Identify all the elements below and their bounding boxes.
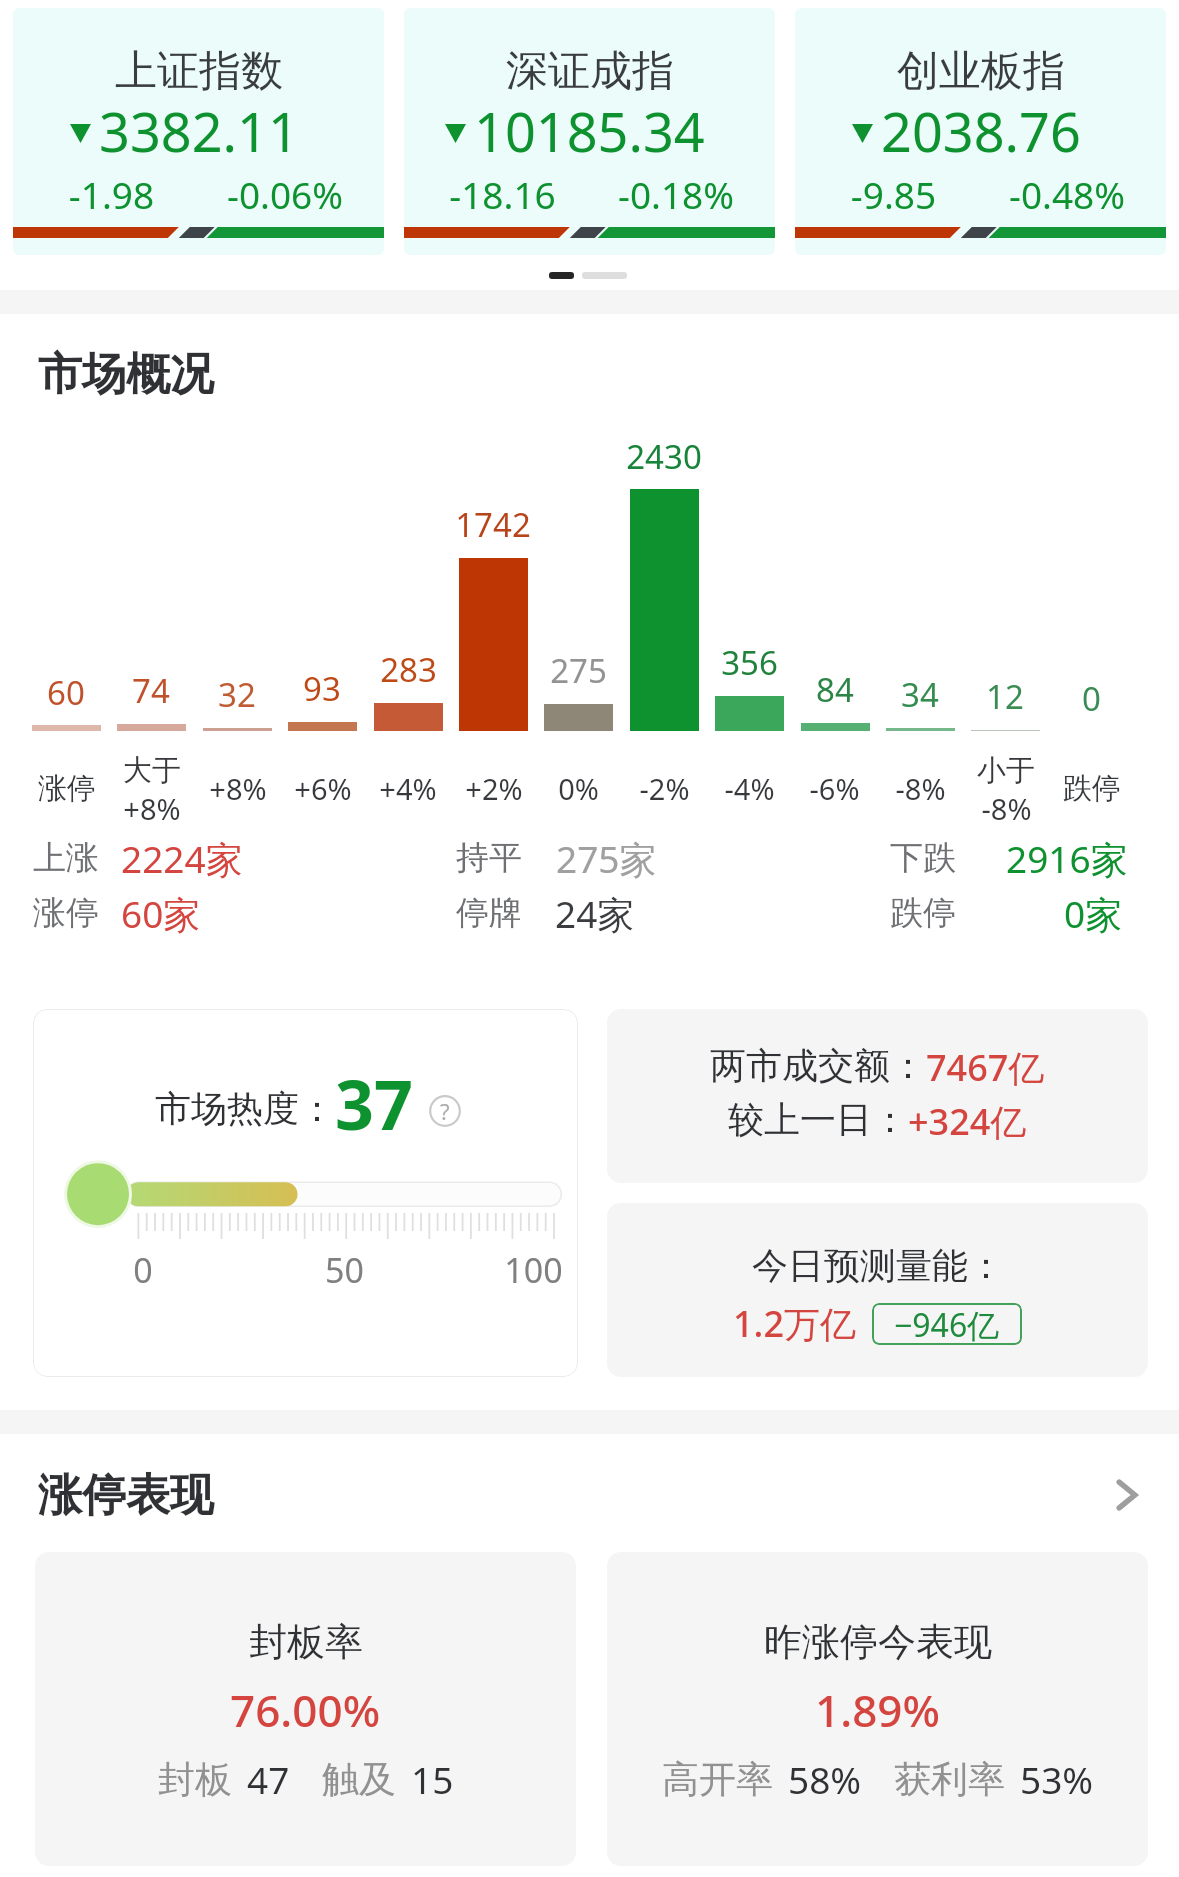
staticText: 58% (788, 1754, 862, 1804)
staticText: 跌停 (890, 892, 956, 934)
staticText: 0 (133, 1247, 153, 1293)
staticText: −946亿 (894, 1303, 1000, 1345)
staticText: 停牌 (456, 892, 522, 934)
staticText: -0.48% (980, 169, 1154, 219)
staticText: 74 (132, 668, 170, 713)
staticText: +8% (123, 789, 181, 824)
button[interactable]: 昨涨停今表现 (607, 1552, 1148, 1866)
staticText: -0.06% (198, 169, 372, 219)
staticText: 7467亿 (926, 1043, 1045, 1092)
staticText: 涨停表现 (38, 1468, 214, 1523)
staticText: 275家 (556, 833, 657, 884)
staticText: 76.00% (230, 1680, 381, 1740)
staticText: 小于 (977, 752, 1035, 789)
staticText: 47 (247, 1754, 290, 1804)
staticText: +324亿 (908, 1097, 1027, 1146)
staticText: 0% (558, 769, 599, 808)
staticText: 大于 (123, 752, 181, 789)
staticText: -8% (981, 789, 1032, 824)
staticText: 32 (218, 672, 256, 717)
staticText: 0 (1082, 676, 1101, 721)
staticText: 较上一日： (728, 1097, 908, 1142)
staticText: 356 (721, 640, 778, 685)
staticText: 今日预测量能： (752, 1243, 1004, 1288)
staticText: +8% (209, 769, 267, 808)
staticText: 275 (550, 648, 607, 693)
staticText: 24家 (555, 888, 635, 939)
staticText: 15 (411, 1754, 454, 1804)
staticText: ? (440, 1096, 450, 1126)
staticText: 昨涨停今表现 (764, 1618, 992, 1666)
button[interactable]: 涨停表现 (0, 1452, 1179, 1538)
staticText: -9.85 (807, 169, 980, 219)
staticText: 60家 (121, 888, 201, 939)
staticText: 10185.34 (474, 94, 705, 168)
staticText: 93 (303, 666, 341, 711)
staticText: +6% (294, 769, 352, 808)
staticText: -8% (895, 769, 946, 808)
staticText: 60 (47, 670, 85, 715)
staticText: 上证指数 (115, 45, 283, 98)
staticText: 37 (335, 1057, 413, 1137)
staticText: 84 (816, 667, 854, 712)
button[interactable]: 深证成指 (404, 8, 775, 255)
staticText: 封板 (158, 1756, 232, 1803)
staticText: -18.16 (416, 169, 589, 219)
staticText: 跌停 (1063, 770, 1121, 807)
staticText: -6% (809, 769, 860, 808)
staticText: 两市成交额： (710, 1043, 926, 1088)
staticText: 1.89% (815, 1680, 940, 1740)
staticText: 1742 (455, 502, 531, 547)
staticText: 12 (986, 674, 1024, 719)
staticText: -2% (639, 769, 690, 808)
other: More (1112, 1480, 1142, 1510)
staticText: 2038.76 (881, 94, 1081, 168)
staticText: 市场热度： (155, 1086, 335, 1131)
staticText: 283 (380, 647, 437, 692)
staticText: 2224家 (121, 833, 243, 884)
button[interactable]: 封板率 (35, 1552, 576, 1866)
staticText: 深证成指 (506, 45, 674, 98)
staticText: 上涨 (33, 837, 99, 879)
staticText: 53% (1020, 1754, 1094, 1804)
staticText: 封板率 (249, 1618, 363, 1666)
staticText: +2% (465, 769, 523, 808)
staticText: 持平 (456, 837, 522, 879)
staticText: 2916家 (1006, 833, 1128, 884)
staticText: 获利率 (894, 1756, 1005, 1803)
staticText: 涨停 (38, 770, 96, 807)
button[interactable]: 两市成交额： (607, 1009, 1148, 1183)
staticText: 3382.11 (99, 94, 299, 168)
button[interactable]: 上证指数 (13, 8, 384, 255)
staticText: 高开率 (662, 1756, 773, 1803)
staticText: 市场概况 (38, 347, 214, 402)
staticText: -4% (724, 769, 775, 808)
staticText: 0家 (1064, 888, 1123, 939)
staticText: -0.18% (589, 169, 763, 219)
staticText: 下跌 (890, 837, 956, 879)
staticText: 涨停 (33, 892, 99, 934)
staticText: 触及 (322, 1756, 396, 1803)
button[interactable]: 创业板指 (795, 8, 1166, 255)
staticText: +4% (379, 769, 437, 808)
staticText: 100 (504, 1247, 563, 1293)
staticText: 1.2万亿 (733, 1299, 856, 1348)
staticText: 2430 (626, 434, 702, 479)
button[interactable]: 市场热度： (33, 1009, 578, 1377)
staticText: 34 (901, 672, 939, 717)
staticText: 创业板指 (897, 45, 1065, 98)
staticText: -1.98 (25, 169, 198, 219)
button[interactable]: 今日预测量能： (607, 1203, 1148, 1377)
staticText: 50 (325, 1247, 364, 1293)
